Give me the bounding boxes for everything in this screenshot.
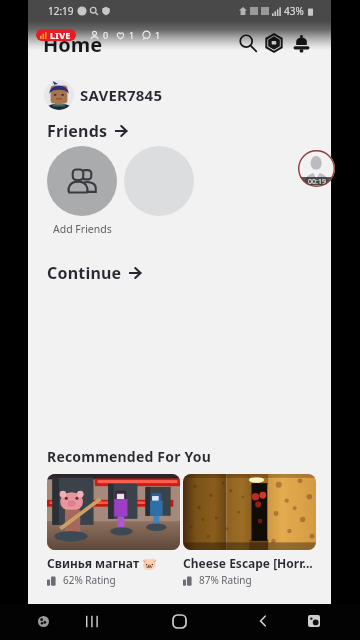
button[interactable]: Home [167,609,191,633]
button[interactable]: Recent apps [80,609,104,633]
staticText: SAVER7845 [80,85,163,105]
staticText: Add Friends [53,222,112,236]
button[interactable]: Свинья магнат 🐷 [47,474,180,587]
staticText: 12:19 [48,4,74,18]
staticText: Recommended For You [47,447,212,466]
button[interactable] [47,146,117,216]
staticText: 87% Rating [199,573,252,587]
staticText: Home [43,31,103,58]
staticText: LIVE [50,29,71,41]
button[interactable]: Friends [47,120,127,142]
button[interactable]: Screenshot [31,609,55,633]
button[interactable]: Back [251,609,275,633]
staticText: 00:19 [308,177,326,185]
staticText: Cheese Escape [Horr... [183,555,313,571]
button[interactable]: Notifications [287,29,315,57]
button[interactable]: Continue [47,262,141,284]
button[interactable]: Cheese Escape [Horr... [183,474,316,587]
button[interactable]: Robux [260,29,288,57]
staticText: 1 [155,29,161,41]
staticText: 0 [103,29,109,41]
button[interactable]: Search [234,29,262,57]
staticText: Свинья магнат 🐷 [47,555,158,571]
staticText: 62% Rating [63,573,116,587]
staticText: Continue [47,262,122,284]
staticText: 43% [284,4,304,18]
staticText: 1 [129,29,135,41]
button[interactable]: Switch keyboard [302,609,326,633]
staticText: Friends [47,120,108,142]
button[interactable]: SAVER7845 [44,80,163,110]
